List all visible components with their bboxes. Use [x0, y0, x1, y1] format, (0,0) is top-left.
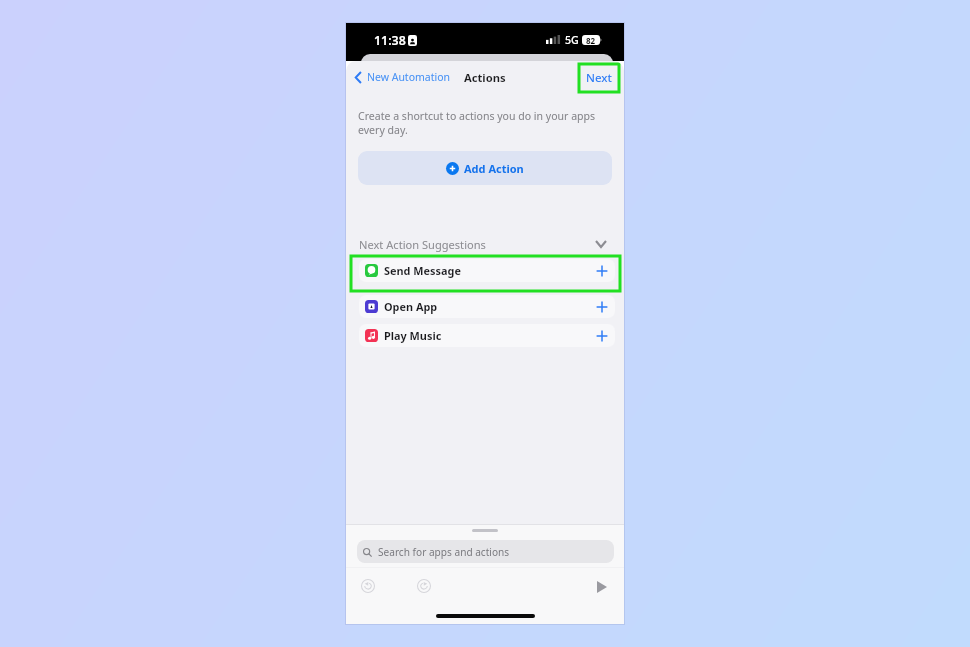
staticText: Actions [464, 70, 506, 85]
button[interactable]: Undo [361, 579, 375, 593]
button[interactable]: Redo [417, 579, 431, 593]
staticText: Next [586, 70, 612, 86]
staticText: Send Message [384, 263, 461, 278]
button[interactable]: Open App [359, 295, 615, 318]
staticText: Next Action Suggestions [359, 237, 486, 252]
staticText: Add Action [464, 161, 524, 176]
button[interactable]: Play Music [359, 324, 615, 347]
button[interactable]: Next [579, 64, 619, 92]
button[interactable]: Run shortcut [597, 581, 607, 593]
staticText: 5G [565, 33, 579, 47]
staticText: Search for apps and actions [378, 545, 510, 559]
button[interactable]: Send Message [359, 259, 615, 282]
button[interactable]: Add Action [358, 151, 612, 185]
staticText: Open App [384, 299, 438, 314]
staticText: New Automation [367, 70, 451, 84]
button[interactable]: New Automation [355, 70, 451, 84]
staticText: Play Music [384, 328, 442, 343]
button[interactable]: Next Action Suggestions [346, 236, 624, 252]
staticText: Create a shortcut to actions you do in y… [358, 109, 612, 138]
staticText: 82 [586, 35, 596, 45]
button[interactable]: Search for apps and actions [357, 540, 614, 563]
staticText: 11:38 [374, 32, 406, 49]
